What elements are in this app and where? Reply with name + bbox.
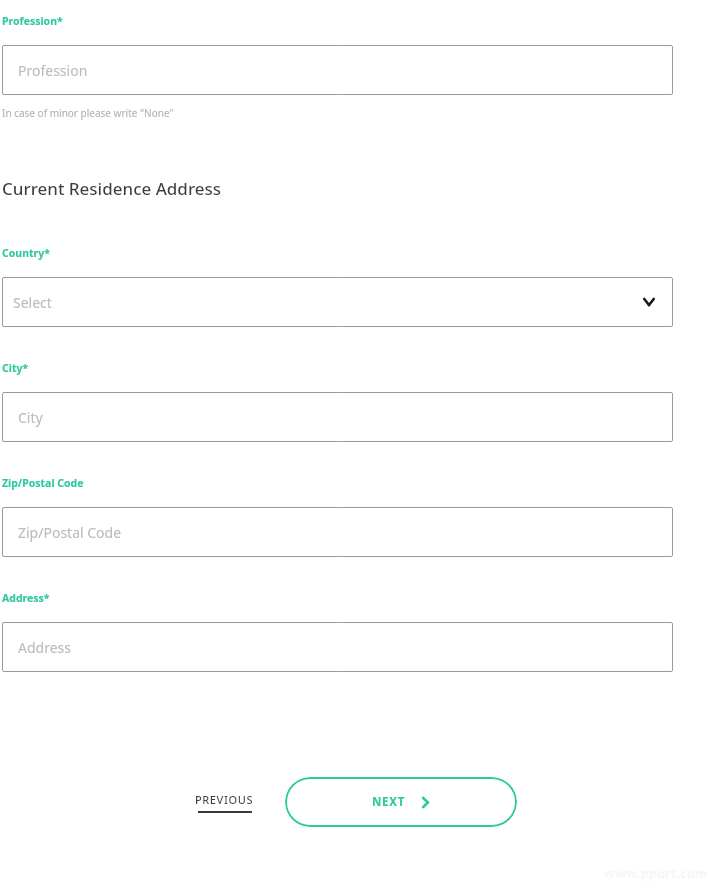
button[interactable]: PREVIOUS (195, 792, 254, 813)
staticText: Current Residence Address (2, 177, 222, 200)
button[interactable]: City (2, 392, 673, 442)
staticText: City (18, 408, 43, 427)
staticText: www.pport.com (604, 864, 708, 882)
button[interactable]: NEXT (285, 777, 517, 827)
staticText: NEXT (372, 794, 405, 810)
button[interactable]: Select (2, 277, 673, 327)
staticText: Zip/Postal Code (2, 476, 84, 490)
staticText: Zip/Postal Code (18, 523, 122, 542)
button[interactable]: Profession (2, 45, 673, 95)
staticText: PREVIOUS (195, 792, 254, 807)
staticText: Country* (2, 246, 50, 260)
staticText: Address (18, 638, 71, 657)
staticText: In case of minor please write "None" (2, 106, 174, 120)
staticText: City* (2, 361, 29, 375)
staticText: Profession* (2, 14, 63, 28)
staticText: Select (13, 293, 52, 312)
button[interactable]: Address (2, 622, 673, 672)
staticText: Profession (18, 61, 88, 80)
button[interactable]: Zip/Postal Code (2, 507, 673, 557)
staticText: Address* (2, 591, 50, 605)
